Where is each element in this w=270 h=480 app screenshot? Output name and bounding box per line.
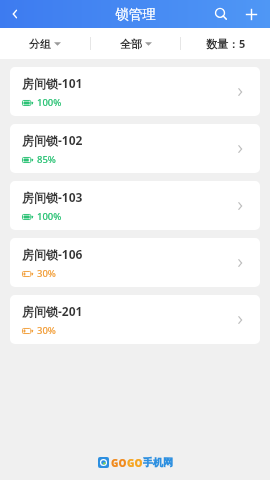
staticText: GO	[127, 456, 143, 468]
button[interactable]: 全部	[91, 28, 180, 59]
staticText: 数量：	[206, 37, 239, 51]
staticText: 手机网	[143, 456, 173, 468]
staticText: 30%	[37, 324, 56, 337]
button[interactable]: 房间锁-103	[10, 181, 260, 230]
button[interactable]: Search	[206, 0, 236, 28]
staticText: 5	[239, 36, 246, 51]
button[interactable]: 房间锁-101	[10, 67, 260, 116]
button[interactable]: Back	[0, 0, 30, 28]
staticText: 房间锁-106	[22, 246, 83, 262]
button[interactable]: 数量：	[181, 28, 270, 59]
button[interactable]: Add	[236, 0, 266, 28]
staticText: 房间锁-102	[22, 132, 83, 148]
staticText: 100%	[37, 96, 62, 109]
button[interactable]: 房间锁-102	[10, 124, 260, 173]
staticText: 85%	[37, 153, 56, 166]
staticText: 全部	[120, 37, 142, 51]
button[interactable]: 分组	[0, 28, 90, 59]
staticText: 房间锁-103	[22, 189, 83, 205]
staticText: 100%	[37, 210, 62, 223]
staticText: 房间锁-201	[22, 303, 83, 319]
staticText: GO	[111, 456, 127, 468]
staticText: 分组	[29, 37, 51, 51]
button[interactable]: 房间锁-106	[10, 238, 260, 287]
button[interactable]: 房间锁-201	[10, 295, 260, 344]
staticText: 房间锁-101	[22, 75, 83, 91]
staticText: 30%	[37, 267, 56, 280]
staticText: 锁管理	[115, 6, 156, 23]
